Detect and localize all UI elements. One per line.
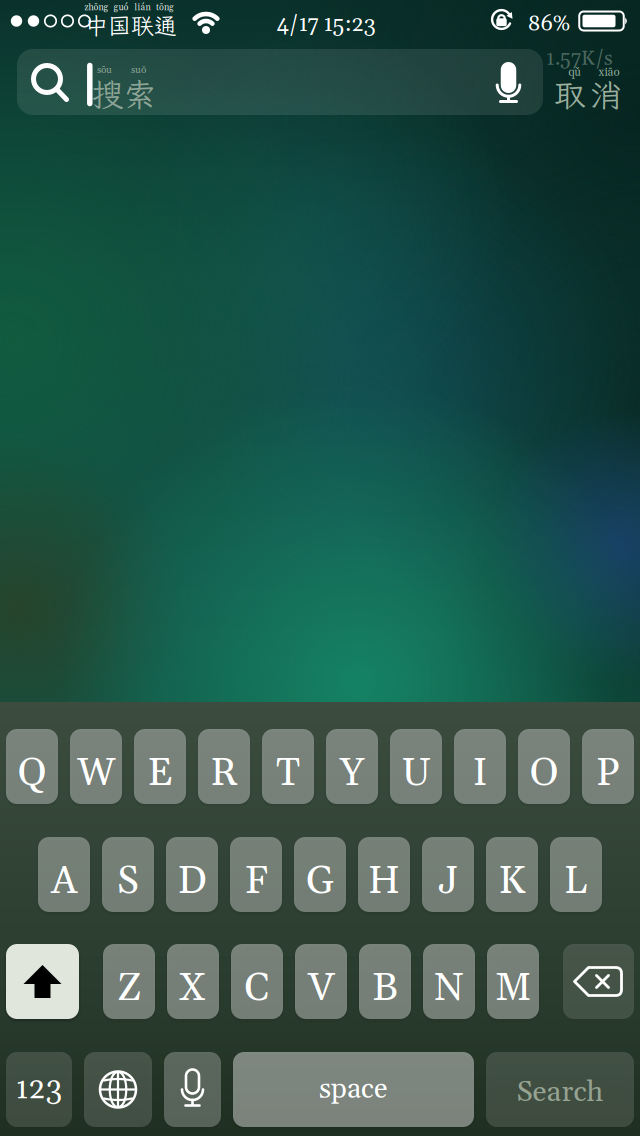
staticText: J [438, 857, 458, 906]
staticText: A [51, 857, 77, 906]
staticText: F [244, 857, 267, 906]
staticText: S [117, 857, 139, 906]
button[interactable]: I [454, 729, 506, 804]
button[interactable]: B [359, 944, 411, 1019]
staticText: T [276, 749, 300, 798]
staticText: Search [516, 1074, 603, 1111]
button[interactable]: 123 [6, 1052, 72, 1127]
button[interactable]: K [486, 837, 538, 912]
button[interactable]: F [230, 837, 282, 912]
staticText: N [434, 964, 464, 1013]
staticText: K [498, 857, 525, 906]
button[interactable]: Shift [6, 944, 79, 1019]
staticText: guó [113, 2, 128, 13]
staticText: 4/17 15:23 [276, 10, 375, 38]
button[interactable]: J [422, 837, 474, 912]
staticText: M [495, 964, 531, 1013]
staticText: B [372, 964, 397, 1013]
button[interactable]: P [582, 729, 634, 804]
button[interactable]: N [423, 944, 475, 1019]
button[interactable]: Z [103, 944, 155, 1019]
staticText: U [401, 749, 430, 798]
button[interactable]: X [167, 944, 219, 1019]
button[interactable]: 取消 [550, 58, 634, 118]
button[interactable]: V [295, 944, 347, 1019]
button[interactable]: A [38, 837, 90, 912]
staticText: 123 [15, 1070, 62, 1109]
button[interactable]: Delete [563, 944, 634, 1019]
staticText: R [210, 749, 237, 798]
button[interactable]: Dictate [164, 1052, 221, 1127]
button[interactable]: H [358, 837, 410, 912]
staticText: 1.57K/s [546, 46, 613, 72]
staticText: O [529, 749, 558, 798]
staticText: I [472, 749, 487, 798]
staticText: lián [134, 2, 150, 13]
staticText: V [308, 964, 334, 1013]
staticText: C [244, 964, 269, 1013]
staticText: G [306, 857, 334, 906]
button[interactable]: M [487, 944, 539, 1019]
staticText: qǔ [568, 65, 581, 80]
button[interactable]: space [233, 1052, 474, 1127]
staticText: 搜 [91, 73, 123, 115]
button[interactable]: U [390, 729, 442, 804]
button[interactable]: G [294, 837, 346, 912]
staticText: Y [340, 749, 364, 798]
staticText: Q [17, 749, 46, 798]
staticText: D [177, 857, 206, 906]
button[interactable]: E [134, 729, 186, 804]
staticText: W [77, 749, 115, 798]
staticText: 86% [527, 10, 570, 38]
staticText: tōng [156, 2, 174, 13]
button[interactable]: Search [486, 1052, 634, 1127]
staticText: xiāo [598, 65, 619, 80]
button[interactable]: Q [6, 729, 58, 804]
button[interactable]: Next keyboard [84, 1052, 152, 1127]
staticText: 消 [590, 73, 622, 115]
button[interactable]: R [198, 729, 250, 804]
button[interactable]: C [231, 944, 283, 1019]
button[interactable]: O [518, 729, 570, 804]
button[interactable]: T [262, 729, 314, 804]
staticText: X [179, 964, 207, 1013]
button[interactable]: W [70, 729, 122, 804]
staticText: 中国联通 [85, 10, 177, 41]
button[interactable]: Dictation [493, 60, 523, 106]
button[interactable]: S [102, 837, 154, 912]
button[interactable]: 搜索 [17, 49, 543, 115]
button[interactable]: L [550, 837, 602, 912]
button[interactable]: D [166, 837, 218, 912]
staticText: sōu [97, 64, 112, 76]
staticText: H [368, 857, 400, 906]
staticText: zhōng [84, 2, 108, 13]
staticText: 取 [554, 73, 586, 115]
staticText: 索 [123, 73, 155, 115]
staticText: Z [117, 964, 140, 1013]
staticText: L [564, 857, 588, 906]
staticText: E [147, 749, 172, 798]
staticText: space [319, 1072, 388, 1107]
staticText: suǒ [131, 64, 146, 76]
staticText: P [596, 749, 620, 798]
button[interactable]: Y [326, 729, 378, 804]
